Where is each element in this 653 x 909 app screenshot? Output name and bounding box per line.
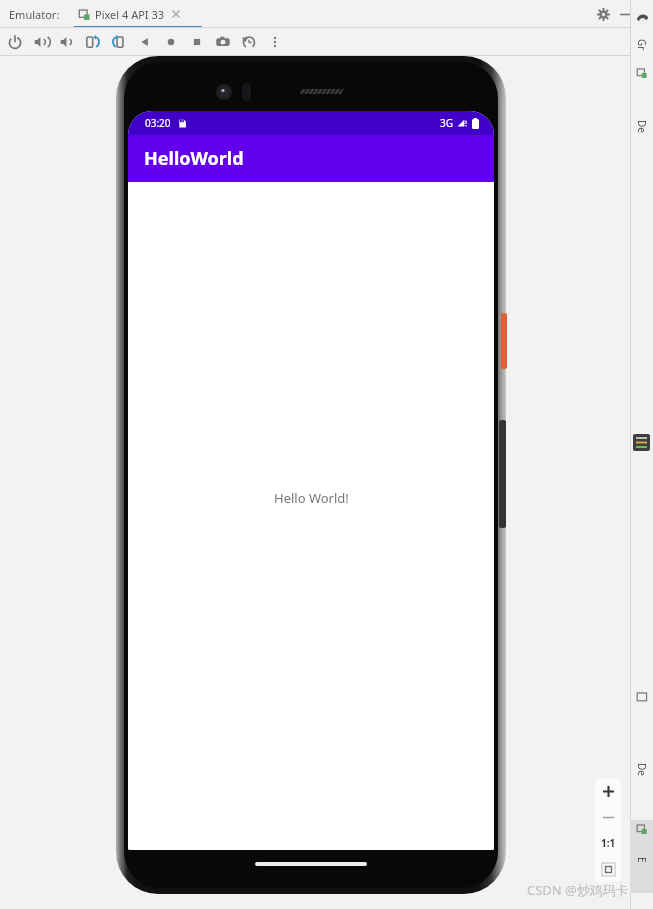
staticText: 03:20 <box>145 116 171 130</box>
button[interactable]: Overview <box>184 29 210 55</box>
staticText: Device File Explorer <box>635 763 649 777</box>
button[interactable]: Settings <box>592 3 614 25</box>
staticText: 1:1 <box>601 836 616 850</box>
staticText: Gradle <box>635 39 649 53</box>
button[interactable]: 1:1 <box>595 830 621 856</box>
button[interactable]: Fit to screen <box>595 856 621 882</box>
button[interactable]: Minimize <box>614 3 636 25</box>
button[interactable]: Device File Explorer <box>630 688 653 838</box>
staticText: Hello World! <box>274 489 349 507</box>
staticText: HelloWorld <box>144 146 244 171</box>
staticText: Emulator <box>635 857 649 871</box>
button[interactable]: Rotate right <box>106 29 132 55</box>
button[interactable]: More <box>262 29 288 55</box>
button[interactable]: History <box>236 29 262 55</box>
staticText: 3G <box>440 116 453 130</box>
button[interactable]: Rotate left <box>80 29 106 55</box>
button[interactable]: Volume up <box>28 29 54 55</box>
button[interactable]: Home <box>158 29 184 55</box>
staticText: CSDN @炒鸡玛卡 <box>527 881 629 899</box>
button[interactable]: Back <box>132 29 158 55</box>
button[interactable]: Zoom in <box>595 778 621 804</box>
staticText: Device Manager <box>635 120 649 134</box>
button[interactable]: HelloWorld <box>128 135 494 182</box>
staticText: Emulator: <box>9 7 60 22</box>
button[interactable]: Emulator <box>630 820 653 893</box>
button[interactable]: Volume down <box>54 29 80 55</box>
button[interactable]: Gradle <box>630 8 653 68</box>
staticText: Pixel 4 API 33 <box>95 7 165 22</box>
button[interactable]: Device Manager <box>630 64 653 176</box>
button[interactable]: Power <box>2 29 28 55</box>
button[interactable]: Pixel 4 API 33 <box>78 0 180 28</box>
button[interactable]: Zoom out <box>595 804 621 830</box>
button[interactable]: Screenshot <box>210 29 236 55</box>
